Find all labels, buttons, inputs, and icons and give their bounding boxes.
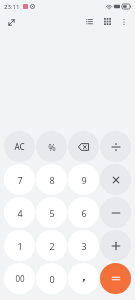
staticText: 00 [15, 273, 25, 284]
button[interactable]: 1 [4, 230, 35, 261]
button[interactable]: 5 [36, 197, 67, 228]
staticText: 3 [81, 240, 87, 252]
button[interactable]: 0 [36, 263, 67, 294]
button[interactable]: 3 [68, 230, 99, 261]
button[interactable]: 8 [36, 164, 67, 195]
button[interactable]: 2 [36, 230, 67, 261]
button[interactable]: 6 [68, 197, 99, 228]
button[interactable]: Scientific mode [100, 14, 115, 29]
staticText: % [48, 141, 56, 153]
button[interactable]: Multiply [100, 164, 131, 195]
button[interactable] [100, 131, 131, 162]
staticText: 8 [49, 174, 55, 186]
staticText: AC [14, 141, 25, 152]
staticText: 4 [17, 207, 23, 219]
button[interactable]: Equals [100, 263, 131, 294]
button[interactable]: Expand [4, 15, 18, 29]
button[interactable]: Backspace [68, 131, 99, 162]
button[interactable] [68, 263, 99, 294]
staticText: 9 [81, 174, 87, 186]
button[interactable]: 4 [4, 197, 35, 228]
staticText: 5 [49, 207, 55, 219]
button[interactable]: History [82, 14, 97, 29]
button[interactable]: % [36, 131, 67, 162]
staticText: 7 [17, 174, 23, 186]
staticText: 23:11 [4, 3, 20, 11]
button[interactable]: More options [117, 15, 131, 29]
button[interactable]: 9 [68, 164, 99, 195]
staticText: 6 [81, 207, 87, 219]
button[interactable]: Plus [100, 230, 131, 261]
button[interactable]: 00 [4, 263, 35, 294]
button[interactable]: Minus [100, 197, 131, 228]
staticText: 2 [49, 240, 55, 252]
button[interactable]: AC [4, 131, 35, 162]
staticText: 1 [17, 240, 23, 252]
button[interactable]: 7 [4, 164, 35, 195]
staticText: 0 [49, 273, 55, 285]
